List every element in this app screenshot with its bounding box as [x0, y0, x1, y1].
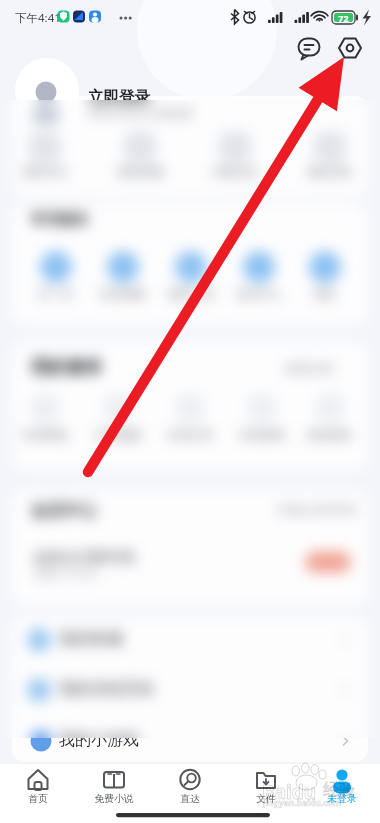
- staticText: 登录后同步云端收藏: [88, 106, 192, 120]
- staticText: 我的关注: [2, 165, 88, 179]
- staticText: 常用服务: [31, 210, 89, 228]
- staticText: 免费小说: [76, 793, 152, 805]
- staticText: 我的关注: [2, 165, 88, 179]
- staticText: 我的消息: [287, 165, 373, 179]
- staticText: 我的小游戏: [59, 730, 139, 750]
- staticText: 立即登录: [88, 87, 150, 107]
- staticText: 查看全部: [284, 361, 334, 377]
- staticText: 百度网盘: [9, 428, 81, 442]
- staticText: 经验: [323, 780, 355, 800]
- staticText: 我的服务: [31, 356, 103, 379]
- staticText: 立即登录: [88, 87, 150, 107]
- staticText: 我的小游戏: [59, 730, 139, 750]
- staticText: 首页: [0, 793, 76, 805]
- staticText: 百度贴吧: [226, 428, 298, 442]
- staticText: 百度网盘: [9, 428, 81, 442]
- staticText: 72: [334, 12, 353, 24]
- staticText: 低至0.1元/天: [34, 566, 98, 581]
- button[interactable]: Feedback messages: [296, 34, 324, 62]
- button[interactable]: 直达: [152, 764, 228, 823]
- staticText: 更多: [290, 287, 360, 301]
- button[interactable]: 未登录: [304, 764, 380, 823]
- staticText: 我的订单: [156, 287, 226, 301]
- staticText: 我的收藏: [97, 165, 183, 179]
- button[interactable]: Settings: [336, 34, 364, 62]
- staticText: 百度地图: [82, 428, 154, 442]
- staticText: 更多服务: [294, 428, 366, 442]
- staticText: 扫一扫: [21, 287, 91, 301]
- staticText: 超值会员限时抢: [34, 548, 136, 566]
- staticText: 我的订单: [156, 287, 226, 301]
- button[interactable]: 首页: [0, 764, 76, 823]
- staticText: 百度文库: [154, 428, 226, 442]
- staticText: 语音搜索: [88, 287, 158, 301]
- staticText: 低至0.1元/天: [34, 566, 98, 581]
- staticText: 超值会员限时抢: [34, 548, 136, 566]
- staticText: 我的收藏: [59, 629, 123, 649]
- staticText: 浏览历史: [192, 165, 278, 179]
- staticText: 安全中心: [224, 287, 294, 301]
- staticText: 扫一扫: [21, 287, 91, 301]
- staticText: 更多: [290, 287, 360, 301]
- staticText: jingyan.baidu.com: [263, 797, 342, 809]
- staticText: 更多服务: [294, 428, 366, 442]
- staticText: 会员中心: [31, 500, 97, 521]
- staticText: 文件: [228, 793, 304, 805]
- staticText: 语音搜索: [88, 287, 158, 301]
- staticText: 我的浏览历史: [59, 679, 155, 699]
- button[interactable]: 文件: [228, 764, 304, 823]
- staticText: 浏览历史: [192, 165, 278, 179]
- staticText: 百度贴吧: [226, 428, 298, 442]
- staticText: 直达: [152, 793, 228, 805]
- staticText: Baidu: [262, 779, 317, 805]
- staticText: 百度地图: [82, 428, 154, 442]
- staticText: 下午4:41: [15, 10, 61, 26]
- staticText: 我的消息: [287, 165, 373, 179]
- staticText: 未登录: [304, 793, 380, 805]
- staticText: 我的收藏: [97, 165, 183, 179]
- staticText: 查看全部: [284, 361, 334, 377]
- staticText: 会员中心: [31, 500, 97, 521]
- staticText: 百度文库: [154, 428, 226, 442]
- staticText: 常用服务: [31, 210, 89, 228]
- staticText: 我的收藏: [59, 629, 123, 649]
- staticText: 安全中心: [224, 287, 294, 301]
- staticText: 登录后同步云端收藏: [88, 106, 192, 120]
- staticText: 我的浏览历史: [59, 679, 155, 699]
- button[interactable]: 免费小说: [76, 764, 152, 823]
- staticText: 我的服务: [31, 356, 103, 379]
